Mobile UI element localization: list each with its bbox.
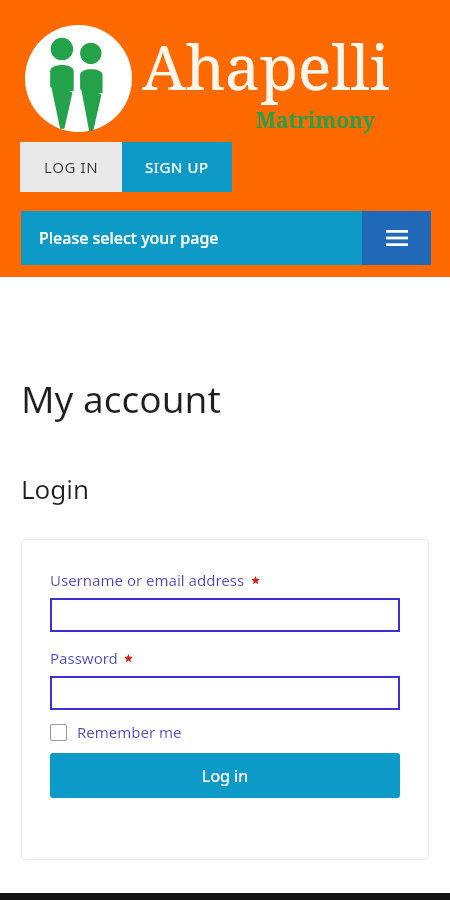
- staticText: Password: [50, 648, 118, 668]
- button[interactable]: Log in: [50, 753, 400, 798]
- button[interactable]: LOG IN: [20, 142, 122, 192]
- staticText: My account: [21, 373, 221, 423]
- button[interactable]: [50, 598, 400, 632]
- staticText: Remember me: [77, 722, 182, 742]
- staticText: LOG IN: [44, 157, 99, 177]
- staticText: Please select your page: [39, 227, 219, 249]
- button[interactable]: Open menu: [362, 211, 431, 265]
- staticText: SIGN UP: [145, 157, 209, 177]
- button[interactable]: SIGN UP: [122, 142, 232, 192]
- staticText: Username or email address: [50, 570, 245, 590]
- staticText: Login: [21, 471, 90, 506]
- staticText: Log in: [202, 765, 249, 787]
- staticText: Ahapelli: [142, 24, 390, 108]
- button[interactable]: Remember me: [50, 722, 182, 742]
- button[interactable]: [50, 676, 400, 710]
- staticText: Matrimony: [256, 106, 375, 135]
- button[interactable]: Please select your page: [21, 211, 431, 265]
